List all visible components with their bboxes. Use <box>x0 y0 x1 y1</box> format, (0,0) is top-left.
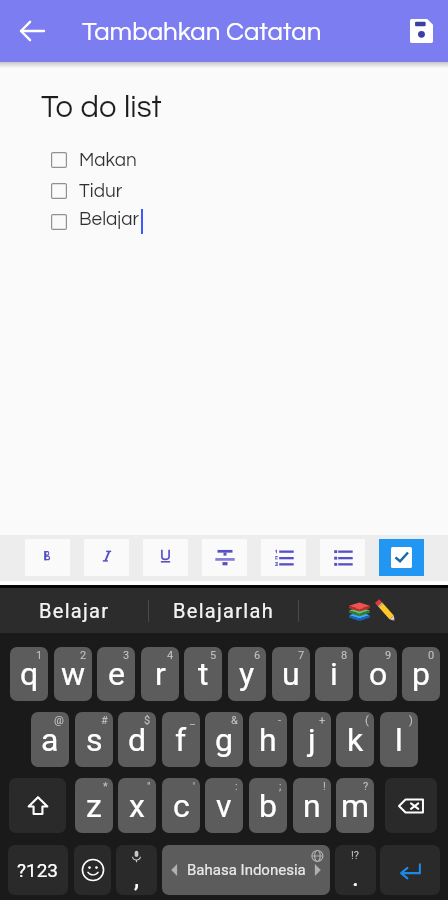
button[interactable]: t <box>184 647 222 701</box>
button[interactable]: Stickers <box>299 588 448 633</box>
button[interactable]: Shift <box>9 778 66 833</box>
button[interactable]: a <box>31 712 69 767</box>
staticText: e <box>108 655 125 693</box>
staticText: k <box>347 721 364 759</box>
staticText: Makan <box>79 150 137 170</box>
button[interactable]: w <box>54 647 92 701</box>
staticText: , <box>134 863 140 893</box>
button[interactable]: Period <box>335 845 376 895</box>
staticText: & <box>231 714 238 727</box>
staticText: + <box>319 714 326 727</box>
staticText: ! <box>323 780 326 793</box>
button[interactable]: Backspace <box>385 778 437 833</box>
staticText: Tidur <box>79 181 123 201</box>
button[interactable]: Checklist <box>379 539 424 576</box>
staticText: ) <box>409 714 413 727</box>
button[interactable]: v <box>205 778 243 833</box>
button[interactable]: x <box>118 778 156 833</box>
staticText: 7 <box>298 649 305 662</box>
staticText: Belajarlah <box>173 599 275 622</box>
button[interactable]: j <box>293 712 331 767</box>
staticText: i <box>330 655 338 693</box>
staticText: @ <box>54 714 64 727</box>
button[interactable]: z <box>75 778 113 833</box>
button[interactable]: Belajar <box>0 588 148 633</box>
button[interactable]: o <box>359 647 397 701</box>
button[interactable]: h <box>249 712 287 767</box>
staticText: Belajar <box>79 209 140 229</box>
button[interactable]: i <box>315 647 353 701</box>
staticText: 9 <box>385 649 392 662</box>
button[interactable]: Underline <box>143 539 188 576</box>
button[interactable]: Numbered list <box>261 539 306 576</box>
staticText: 8 <box>341 649 348 662</box>
button[interactable]: Save <box>399 9 443 53</box>
staticText: _ <box>190 714 195 727</box>
button[interactable]: y <box>228 647 266 701</box>
staticText: h <box>259 721 277 759</box>
button[interactable]: Back <box>10 9 54 53</box>
button[interactable]: Makan <box>0 144 448 175</box>
button[interactable]: Emoji <box>74 845 111 895</box>
staticText: a <box>41 721 59 759</box>
staticText: 6 <box>254 649 261 662</box>
button[interactable]: Comma, voice input <box>116 845 157 895</box>
button[interactable]: f <box>162 712 200 767</box>
button[interactable]: Italic <box>84 539 129 576</box>
button[interactable]: s <box>75 712 113 767</box>
staticText: l <box>395 721 403 759</box>
staticText: t <box>198 655 209 693</box>
staticText: x <box>129 787 145 825</box>
staticText: q <box>20 655 39 693</box>
staticText: ? <box>363 780 369 793</box>
staticText: n <box>303 787 321 825</box>
staticText: s <box>86 721 103 759</box>
staticText: Belajar <box>39 599 110 622</box>
button[interactable]: u <box>272 647 310 701</box>
staticText: v <box>216 787 232 825</box>
button[interactable]: p <box>402 647 440 701</box>
staticText: r <box>155 655 166 693</box>
staticText: 4 <box>167 649 174 662</box>
staticText: u <box>282 655 300 693</box>
button[interactable]: m <box>336 778 374 833</box>
staticText: w <box>61 655 86 693</box>
staticText: ; <box>279 780 282 793</box>
button[interactable]: q <box>10 647 48 701</box>
button[interactable]: k <box>336 712 374 767</box>
button[interactable]: b <box>249 778 287 833</box>
staticText: 1 <box>36 649 43 662</box>
button[interactable]: Belajar <box>0 206 448 237</box>
button[interactable]: Space <box>162 845 330 895</box>
staticText: z <box>86 787 102 825</box>
staticText: ?123 <box>17 859 59 881</box>
button[interactable]: n <box>293 778 331 833</box>
staticText: 5 <box>210 649 217 662</box>
staticText: m <box>341 787 370 825</box>
staticText: p <box>412 655 430 693</box>
button[interactable]: Bold <box>25 539 70 576</box>
staticText: : <box>235 780 238 793</box>
staticText: b <box>259 787 277 825</box>
staticText: To do list <box>41 92 162 124</box>
staticText: 3 <box>123 649 130 662</box>
button[interactable]: e <box>97 647 135 701</box>
staticText: g <box>215 721 233 759</box>
staticText: $ <box>144 714 151 727</box>
button[interactable]: l <box>380 712 418 767</box>
button[interactable]: d <box>118 712 156 767</box>
button[interactable]: r <box>141 647 179 701</box>
button[interactable]: Bulleted list <box>320 539 365 576</box>
staticText: ( <box>365 714 369 727</box>
staticText: . <box>352 862 359 892</box>
button[interactable]: ?123 <box>8 845 68 895</box>
button[interactable]: Strikethrough <box>202 539 247 576</box>
button[interactable]: Tidur <box>0 175 448 206</box>
button[interactable]: g <box>205 712 243 767</box>
button[interactable]: Enter <box>380 845 440 895</box>
staticText: c <box>173 787 190 825</box>
button[interactable]: Belajarlah <box>149 588 298 633</box>
staticText: o <box>369 655 388 693</box>
staticText: j <box>308 721 316 759</box>
button[interactable]: c <box>162 778 200 833</box>
